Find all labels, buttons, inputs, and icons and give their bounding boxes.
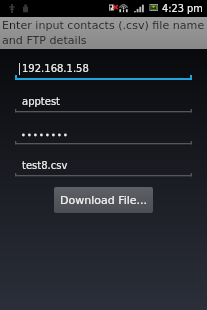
staticText: apptest [22,96,61,108]
staticText: Enter input contacts (.csv) file name an… [2,19,205,47]
button[interactable] [15,126,192,148]
staticText: test8.csv [22,160,68,172]
staticText: 4:23 pm [162,3,203,14]
button[interactable]: 192.168.1.58 [15,61,192,83]
staticText: 192.168.1.58 [22,63,89,75]
button[interactable]: apptest [15,94,192,116]
other: Notification [22,4,29,13]
other: Download notification [9,4,15,13]
staticText: Download File... [60,194,148,207]
button[interactable]: Download File... [54,187,153,213]
button[interactable]: test8.csv [15,158,192,180]
